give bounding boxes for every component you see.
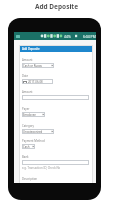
staticText: 6:04 PM [83,34,96,39]
staticText: Uncategorized [23,130,43,134]
staticText: Bank [22,155,29,159]
staticText: Cash or Rupay [23,64,42,68]
staticText: e.g. Transaction ID, Check No [22,166,61,170]
staticText: Payer [22,107,30,111]
staticText: 2017-06-08 [28,80,43,84]
button[interactable]: Uncategorized [22,129,54,134]
staticText: Add Deposite [0,2,113,11]
button[interactable] [22,160,89,165]
button[interactable] [22,95,89,100]
button[interactable]: Employee [22,112,45,117]
button[interactable]: Cash or Rupay [22,63,54,68]
button[interactable]: Cash [22,144,35,149]
staticText: Category [22,124,34,128]
staticText: Employee [23,113,36,117]
button[interactable]: 2017-06-08 [22,79,53,84]
staticText: Payment Method [22,139,45,143]
staticText: Cash [23,145,30,149]
staticText: Amount [22,58,33,62]
staticText: 44% [64,34,71,39]
staticText: Date [22,74,29,78]
staticText: Amount [22,90,33,94]
staticText: Add Deposite [22,47,40,51]
staticText: Description [22,177,38,181]
button[interactable]: Add Deposite [19,45,93,183]
